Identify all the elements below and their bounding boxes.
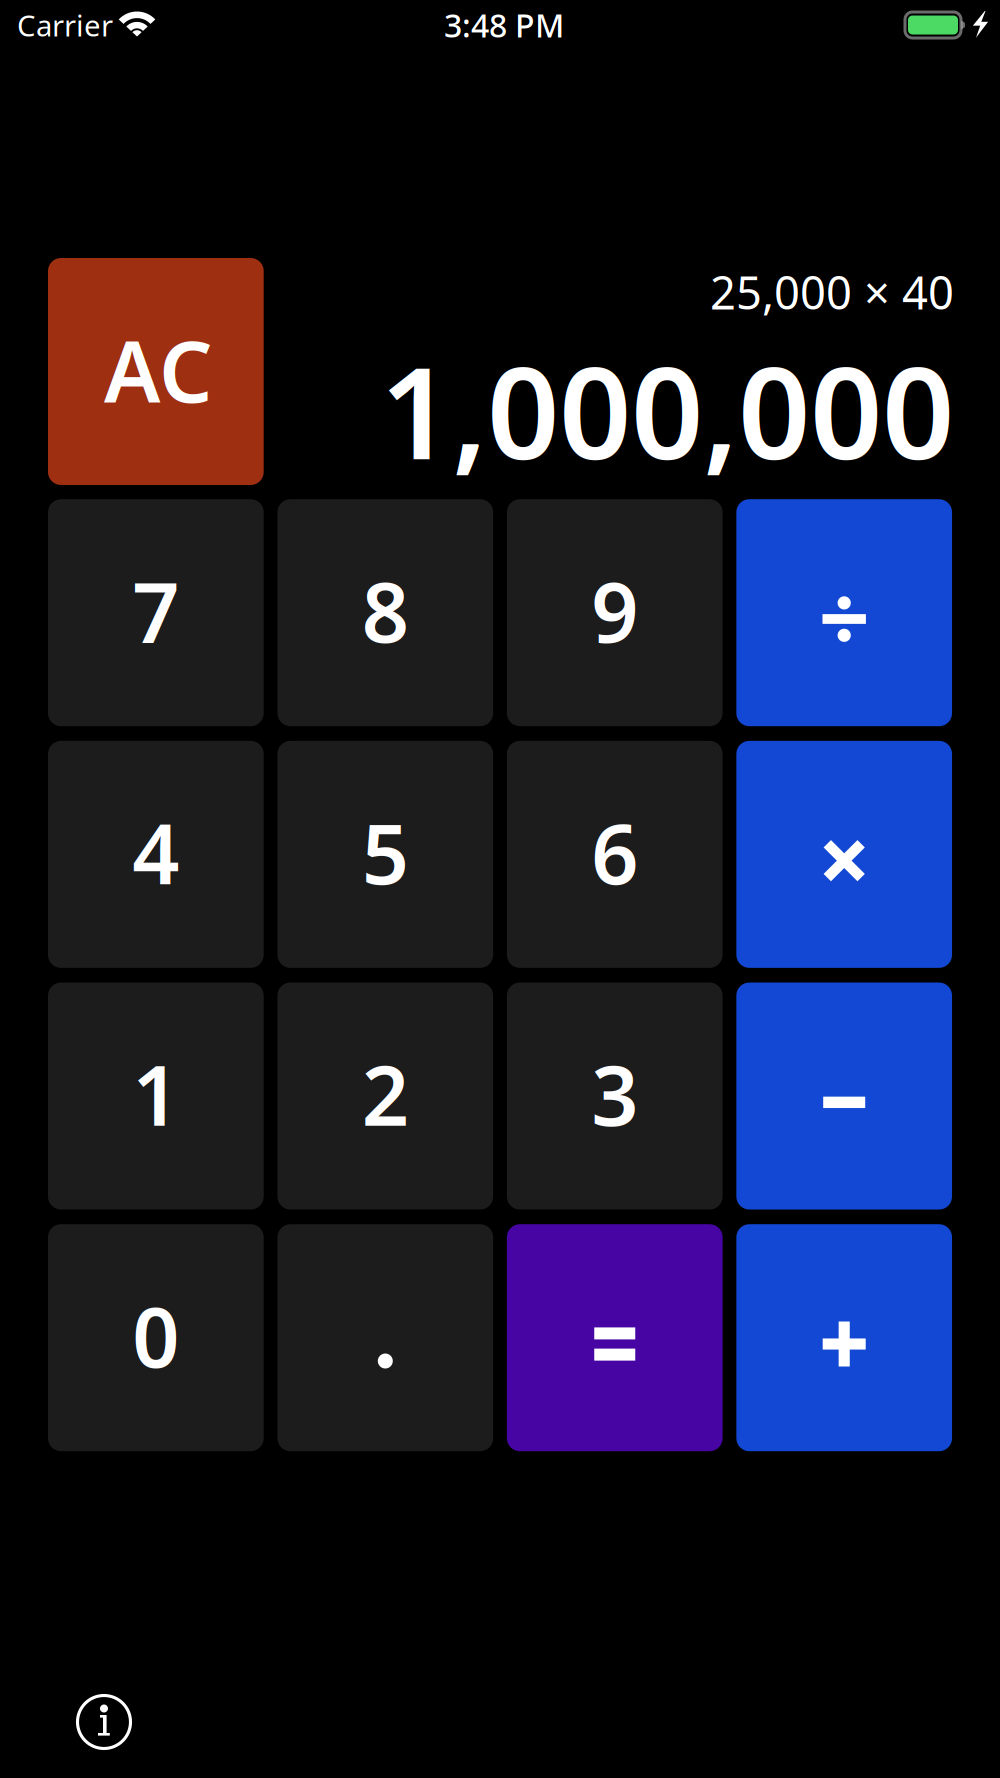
button[interactable]: Add [736,1224,952,1451]
button[interactable]: 3 [507,982,723,1209]
button[interactable]: Divide [736,499,952,726]
button[interactable]: Multiply [736,741,952,968]
staticText: 1,000,000 [380,326,954,494]
button[interactable]: AC [48,258,264,485]
staticText: 5 [362,797,409,907]
staticText: 3 [591,1039,638,1149]
button[interactable]: 0 [48,1224,264,1451]
button[interactable]: Equals [507,1224,723,1451]
button[interactable]: 9 [507,499,723,726]
button[interactable]: 7 [48,499,264,726]
staticText: 7 [132,555,179,665]
staticText: 25,000 × 40 [710,262,954,322]
button[interactable]: Info [76,1694,132,1750]
staticText: 1 [132,1039,179,1149]
button[interactable]: 6 [507,741,723,968]
button[interactable]: 8 [277,499,493,726]
staticText: 2 [362,1039,409,1149]
button[interactable]: 4 [48,741,264,968]
staticText: 8 [362,555,409,665]
staticText: AC [104,314,213,426]
staticText: 3:48 PM [444,4,564,46]
staticText: Carrier [17,5,113,44]
button[interactable]: Subtract [736,982,952,1209]
button[interactable]: 5 [277,741,493,968]
staticText: 9 [591,555,638,665]
staticText: 0 [132,1280,179,1390]
staticText: 4 [132,797,179,907]
button[interactable]: 2 [277,982,493,1209]
staticText: 6 [591,797,638,907]
button[interactable]: 1 [48,982,264,1209]
button[interactable]: Decimal point [277,1224,493,1451]
